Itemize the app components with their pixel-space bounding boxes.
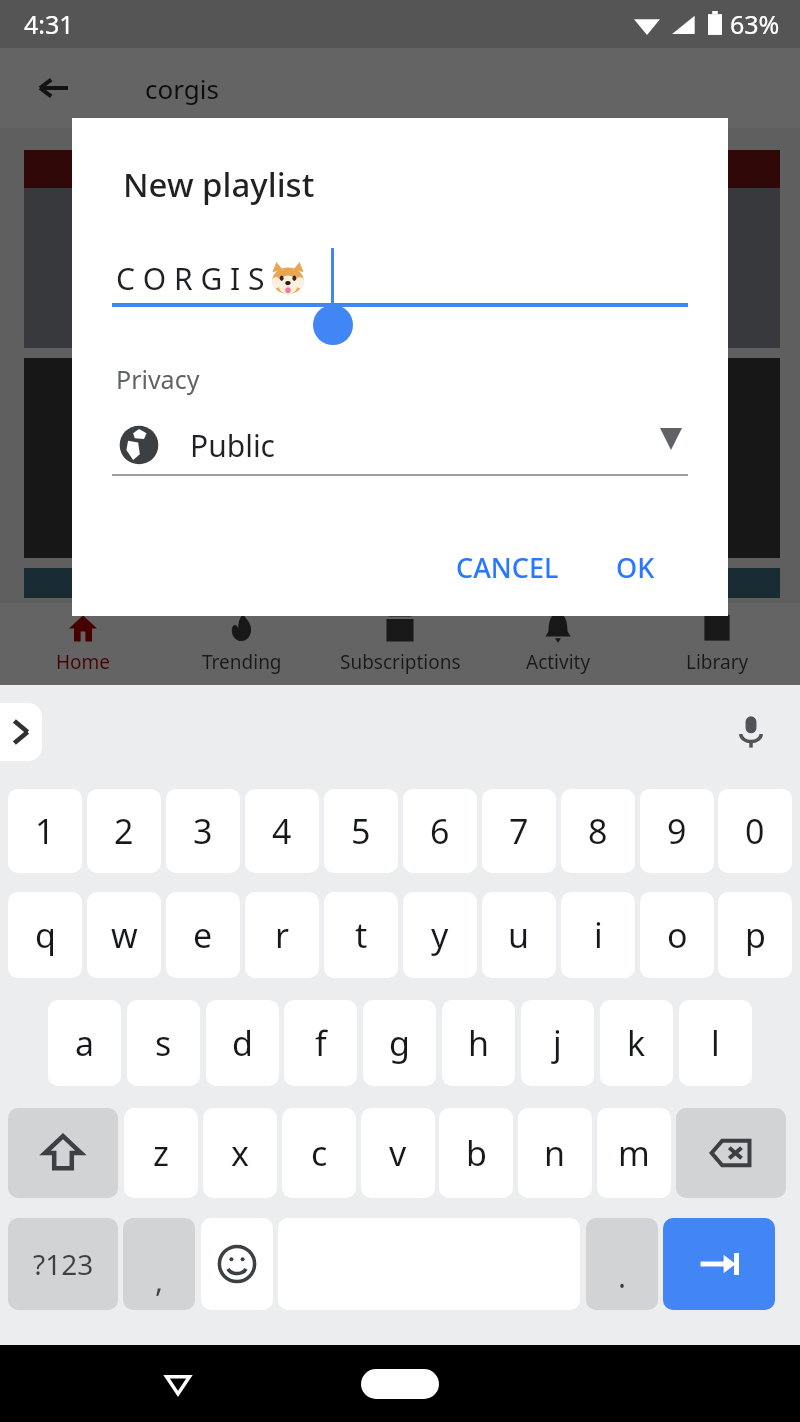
staticText: t — [355, 912, 368, 958]
button[interactable]: Voice input — [722, 703, 780, 761]
button[interactable]: f — [284, 1000, 357, 1086]
staticText: s — [155, 1020, 172, 1066]
button[interactable]: ?123 — [8, 1218, 118, 1310]
button[interactable]: OK — [600, 536, 671, 598]
staticText: 4:31 — [24, 7, 74, 41]
button[interactable]: Shift — [8, 1108, 118, 1198]
button[interactable]: Home — [361, 1369, 439, 1399]
staticText: Public — [190, 425, 276, 466]
staticText: 8 — [588, 808, 608, 854]
button[interactable]: u — [482, 892, 556, 978]
staticText: ?123 — [33, 1245, 94, 1283]
staticText: n — [544, 1130, 566, 1176]
staticText: 3 — [193, 808, 213, 854]
staticText: b — [466, 1130, 487, 1176]
button[interactable]: Home — [8, 603, 158, 685]
staticText: 1 — [35, 808, 55, 854]
button[interactable]: . — [586, 1218, 658, 1310]
button[interactable]: x — [203, 1108, 277, 1198]
button[interactable]: v — [361, 1108, 435, 1198]
staticText: 5 — [351, 808, 371, 854]
staticText: w — [111, 912, 138, 958]
staticText: k — [627, 1020, 646, 1066]
staticText: Subscriptions — [340, 649, 461, 675]
button[interactable]: 5 — [324, 789, 398, 873]
button[interactable]: w — [87, 892, 161, 978]
button[interactable]: Trending — [167, 603, 317, 685]
button[interactable]: 6 — [403, 789, 477, 873]
staticText: Trending — [202, 649, 282, 675]
button[interactable]: o — [640, 892, 714, 978]
button[interactable]: q — [8, 892, 82, 978]
staticText: p — [745, 912, 766, 958]
button[interactable]: 2 — [87, 789, 161, 873]
button[interactable]: Library — [642, 603, 792, 685]
staticText: v — [389, 1130, 407, 1176]
button[interactable]: j — [521, 1000, 594, 1086]
button[interactable]: 3 — [166, 789, 240, 873]
button[interactable]: i — [561, 892, 635, 978]
staticText: Activity — [526, 649, 591, 675]
button[interactable]: n — [518, 1108, 592, 1198]
button[interactable]: h — [442, 1000, 515, 1086]
button[interactable]: k — [600, 1000, 673, 1086]
button[interactable]: d — [206, 1000, 279, 1086]
button[interactable]: b — [439, 1108, 513, 1198]
staticText: Privacy — [116, 362, 200, 396]
staticText: Home — [56, 649, 111, 675]
staticText: y — [431, 912, 449, 958]
staticText: j — [553, 1020, 562, 1066]
staticText: 7 — [509, 808, 529, 854]
button[interactable]: z — [124, 1108, 198, 1198]
staticText: l — [711, 1020, 720, 1066]
staticText: h — [468, 1020, 490, 1066]
button[interactable]: m — [597, 1108, 671, 1198]
button[interactable]: 1 — [8, 789, 82, 873]
staticText: 0 — [745, 808, 765, 854]
button[interactable]: p — [718, 892, 792, 978]
staticText: q — [35, 912, 56, 958]
button[interactable]: Subscriptions — [325, 603, 475, 685]
button[interactable]: g — [363, 1000, 436, 1086]
staticText: e — [193, 912, 213, 958]
button[interactable]: 9 — [640, 789, 714, 873]
staticText: u — [508, 912, 530, 958]
button[interactable]: a — [48, 1000, 121, 1086]
button[interactable]: s — [127, 1000, 200, 1086]
button[interactable]: Enter — [663, 1218, 775, 1310]
button[interactable]: l — [679, 1000, 752, 1086]
staticText: x — [231, 1130, 249, 1176]
staticText: i — [594, 912, 603, 958]
button[interactable]: Public — [112, 406, 688, 484]
staticText: d — [232, 1020, 253, 1066]
staticText: corgis — [145, 71, 219, 106]
staticText: z — [153, 1130, 169, 1176]
button[interactable]: y — [403, 892, 477, 978]
button[interactable]: Activity — [483, 603, 633, 685]
staticText: 9 — [667, 808, 687, 854]
button[interactable]: e — [166, 892, 240, 978]
button[interactable]: 8 — [561, 789, 635, 873]
button[interactable]: r — [245, 892, 319, 978]
button[interactable]: Emoji — [201, 1218, 273, 1310]
staticText: f — [315, 1020, 327, 1066]
button[interactable]: c — [282, 1108, 356, 1198]
staticText: 4 — [272, 808, 292, 854]
staticText: C O R G I S — [116, 258, 265, 299]
staticText: 6 — [430, 808, 450, 854]
staticText: New playlist — [123, 162, 315, 207]
button[interactable]: 4 — [245, 789, 319, 873]
staticText: g — [389, 1020, 410, 1066]
button[interactable]: 0 — [718, 789, 792, 873]
staticText: 63% — [730, 7, 780, 41]
button[interactable]: CANCEL — [440, 536, 575, 598]
button[interactable]: Backspace — [676, 1108, 786, 1198]
button[interactable]: Back — [155, 1361, 201, 1407]
button[interactable]: Expand suggestions — [0, 703, 42, 761]
button[interactable]: t — [324, 892, 398, 978]
button[interactable]: , — [123, 1218, 195, 1310]
staticText: Library — [686, 649, 749, 675]
staticText: . — [618, 1256, 627, 1297]
button[interactable]: 7 — [482, 789, 556, 873]
